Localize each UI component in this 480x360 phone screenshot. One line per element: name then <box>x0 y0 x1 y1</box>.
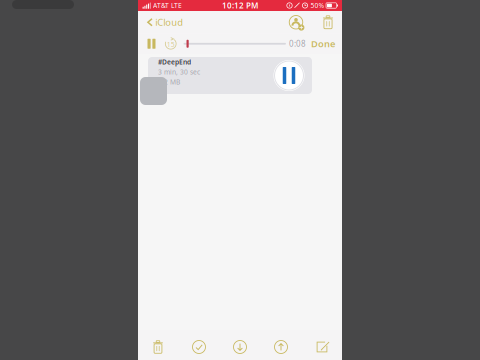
button[interactable]: Upload <box>266 334 296 360</box>
staticText: 10:12 PM <box>222 0 258 11</box>
staticText: 3.2 MB <box>158 78 180 86</box>
staticText: 15 <box>167 40 175 49</box>
button[interactable]: Compose <box>307 334 337 360</box>
staticText: 0:08 <box>289 38 306 49</box>
button[interactable]: iCloud <box>144 11 189 33</box>
staticText: AT&T LTE <box>153 1 182 10</box>
button[interactable]: Pause <box>144 35 159 53</box>
button[interactable]: Add people <box>285 12 307 32</box>
button[interactable]: Delete <box>318 13 338 31</box>
button[interactable]: Done <box>306 33 335 55</box>
button[interactable]: Delete <box>143 334 173 360</box>
button[interactable]: Skip back 15 seconds <box>163 34 178 53</box>
button[interactable]: Mark as done <box>184 334 214 360</box>
staticText: 50% <box>310 1 324 10</box>
staticText: #DeepEnd <box>158 57 191 66</box>
staticText: 3 min, 30 sec <box>158 68 200 76</box>
staticText: iCloud <box>155 16 183 28</box>
button[interactable]: Download <box>225 334 255 360</box>
staticText: Done <box>311 38 335 50</box>
